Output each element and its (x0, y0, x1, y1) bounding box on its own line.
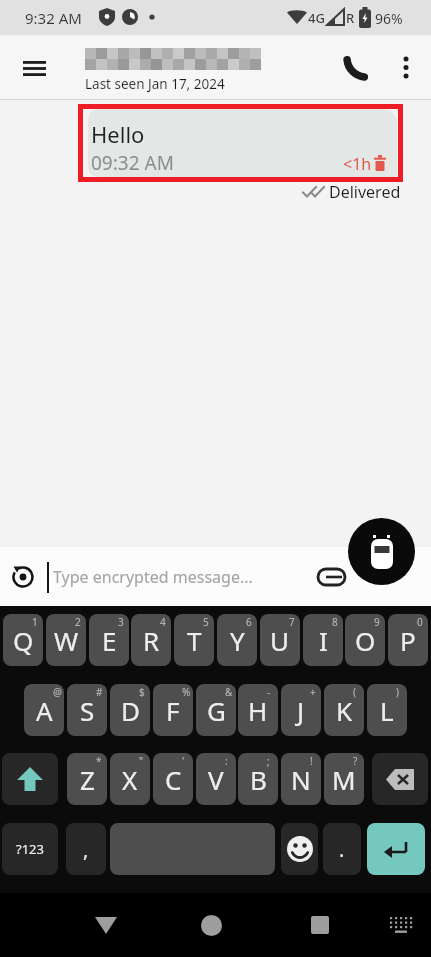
button[interactable]: A (24, 684, 64, 736)
staticText: 96% (375, 9, 403, 28)
button[interactable]: O (345, 614, 385, 666)
button[interactable] (281, 823, 318, 875)
button[interactable]: D (110, 684, 150, 736)
button[interactable]: K (324, 684, 364, 736)
staticText: , (83, 836, 89, 863)
staticText: Hello (91, 119, 145, 149)
staticText: R (143, 623, 160, 658)
staticText: & (225, 685, 233, 699)
button[interactable]: G (196, 684, 236, 736)
staticText: 09:32 AM (91, 150, 174, 176)
staticText: 0 (417, 615, 423, 629)
button[interactable]: J (281, 684, 321, 736)
staticText: 4 (160, 615, 166, 629)
staticText: Last seen Jan 17, 2024 (85, 75, 225, 93)
button[interactable]: N (281, 753, 321, 805)
staticText: O (355, 623, 376, 658)
button[interactable]: Y (217, 614, 257, 666)
button[interactable]: F (153, 684, 193, 736)
button[interactable]: L (367, 684, 407, 736)
staticText: L (380, 693, 394, 728)
staticText: K (336, 693, 353, 728)
staticText: ) (396, 685, 399, 699)
staticText: U (270, 623, 290, 658)
staticText: P (400, 623, 416, 658)
button[interactable]: Hello (88, 109, 397, 177)
staticText: T (187, 623, 202, 658)
staticText: ?123 (16, 840, 44, 858)
button[interactable] (12, 46, 56, 90)
button[interactable]: P (388, 614, 428, 666)
staticText: Q (13, 623, 34, 658)
staticText: X (122, 762, 138, 797)
staticText: + (310, 685, 316, 699)
staticText: G (207, 693, 226, 728)
staticText: Y (230, 623, 245, 658)
button[interactable] (388, 46, 424, 88)
staticText: V (208, 762, 224, 797)
button[interactable]: E (89, 614, 129, 666)
staticText: ' (182, 754, 185, 768)
staticText: 3 (118, 615, 124, 629)
staticText: B (250, 762, 267, 797)
staticText: 2 (75, 615, 81, 629)
staticText: Type encrypted message... (53, 566, 253, 588)
button[interactable] (312, 559, 350, 595)
button[interactable] (189, 903, 233, 947)
staticText: 8 (332, 615, 338, 629)
staticText: ; (267, 754, 270, 768)
button[interactable]: I (303, 614, 343, 666)
staticText: 7 (289, 615, 295, 629)
button[interactable]: U (260, 614, 300, 666)
staticText: H (248, 693, 268, 728)
button[interactable]: Z (67, 753, 107, 805)
staticText: ! (310, 754, 313, 768)
staticText: 9 (374, 615, 380, 629)
staticText: W (54, 623, 79, 658)
staticText: J (297, 693, 305, 728)
staticText: . (339, 836, 345, 863)
button[interactable]: V (196, 753, 236, 805)
staticText: S (80, 693, 95, 728)
staticText: ? (353, 754, 358, 768)
staticText: : (225, 754, 228, 768)
staticText: $ (139, 685, 145, 699)
staticText: D (121, 693, 140, 728)
button[interactable] (367, 823, 425, 875)
staticText: # (96, 685, 103, 699)
button[interactable]: S (67, 684, 107, 736)
button[interactable] (110, 823, 275, 875)
button[interactable] (379, 903, 423, 947)
button[interactable] (348, 518, 415, 585)
staticText: M (332, 762, 356, 797)
button[interactable]: M (324, 753, 364, 805)
button[interactable] (84, 903, 128, 947)
staticText: F (166, 693, 180, 728)
button[interactable] (298, 903, 342, 947)
staticText: R (346, 9, 355, 27)
button[interactable]: B (238, 753, 278, 805)
staticText: * (96, 754, 102, 768)
staticText: 1 (32, 615, 38, 629)
staticText: <1h (343, 153, 372, 175)
button[interactable]: , (66, 823, 106, 875)
button[interactable] (6, 560, 40, 594)
button[interactable]: W (46, 614, 86, 666)
staticText: 4G (308, 9, 325, 27)
staticText: Z (80, 762, 95, 797)
button[interactable]: X (110, 753, 150, 805)
staticText: % (182, 685, 191, 699)
button[interactable] (336, 46, 378, 88)
button[interactable] (372, 753, 428, 805)
button[interactable]: C (153, 753, 193, 805)
staticText: C (165, 762, 182, 797)
button[interactable]: . (323, 823, 361, 875)
staticText: 5 (203, 615, 209, 629)
button[interactable]: T (174, 614, 214, 666)
button[interactable]: R (131, 614, 171, 666)
button[interactable]: H (238, 684, 278, 736)
staticText: @ (53, 685, 62, 699)
button[interactable]: Q (3, 614, 43, 666)
button[interactable]: ?123 (2, 823, 58, 875)
button[interactable] (2, 753, 58, 805)
